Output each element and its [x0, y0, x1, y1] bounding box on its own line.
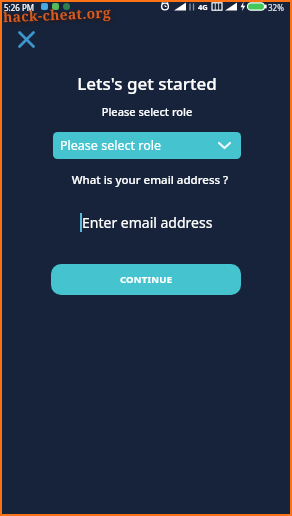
staticText: Please select role	[1, 104, 292, 119]
staticText: What is your email address ?	[4, 172, 292, 188]
staticText: 32%	[268, 2, 284, 13]
staticText: CONTINUE	[120, 273, 173, 286]
staticText: 5:26 PM	[4, 2, 35, 13]
button[interactable]: Please select role	[53, 132, 241, 159]
staticText: Lets's get started	[1, 72, 292, 95]
staticText: hack-cheat.org	[3, 3, 111, 26]
button[interactable]: CONTINUE	[51, 264, 241, 295]
button[interactable]	[19, 32, 34, 47]
button[interactable]: Enter email address	[0, 210, 292, 234]
staticText: 4G	[198, 2, 208, 12]
staticText: Please select role	[60, 137, 161, 154]
staticText: Enter email address	[82, 213, 213, 232]
